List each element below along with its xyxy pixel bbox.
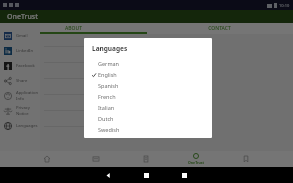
button[interactable]: Share <box>0 73 40 88</box>
staticText: Languages <box>16 123 38 129</box>
button[interactable]: Documents <box>121 151 171 167</box>
staticText: OneTrust <box>188 160 205 165</box>
button[interactable]: Facebook <box>0 58 40 73</box>
button[interactable]: Languages <box>0 118 40 133</box>
staticText: OneTrust <box>7 12 38 22</box>
button[interactable]: Dutch <box>92 113 206 124</box>
staticText: CONTACT <box>208 25 231 32</box>
button[interactable]: OneTrust <box>171 151 221 167</box>
button[interactable]: ABOUT <box>0 23 146 34</box>
staticText: Facebook <box>16 63 35 69</box>
button[interactable] <box>0 0 293 167</box>
staticText: Dutch <box>98 115 114 122</box>
staticText: 10:10 <box>279 3 290 8</box>
button[interactable]: Gmail <box>0 28 40 43</box>
button[interactable]: French <box>92 91 206 102</box>
button[interactable]: English <box>92 69 206 80</box>
button[interactable]: Swedish <box>92 124 206 135</box>
staticText: Application Info <box>16 90 40 102</box>
staticText: Share <box>16 78 28 84</box>
staticText: French <box>98 93 116 100</box>
button[interactable]: News <box>71 151 121 167</box>
button[interactable]: Back <box>106 173 111 178</box>
button[interactable]: Spanish <box>92 80 206 91</box>
staticText: Spanish <box>98 82 119 89</box>
staticText: ABOUT <box>65 25 82 32</box>
staticText: English <box>98 71 117 78</box>
button[interactable]: German <box>92 58 206 69</box>
staticText: LinkedIn <box>16 48 34 54</box>
staticText: Gmail <box>16 33 28 39</box>
staticText: Swedish <box>98 126 120 133</box>
button[interactable]: Privacy Notice <box>0 103 40 118</box>
button[interactable]: CONTACT <box>146 23 293 34</box>
staticText: Languages <box>92 44 128 53</box>
staticText: Italian <box>98 104 115 111</box>
button[interactable]: Italian <box>92 102 206 113</box>
staticText: Privacy Notice <box>16 105 40 117</box>
button[interactable]: Bookmarks <box>221 151 271 167</box>
button[interactable]: Application Info <box>0 88 40 103</box>
button[interactable]: LinkedIn <box>0 43 40 58</box>
button[interactable]: Home <box>22 151 71 167</box>
staticText: German <box>98 60 120 67</box>
